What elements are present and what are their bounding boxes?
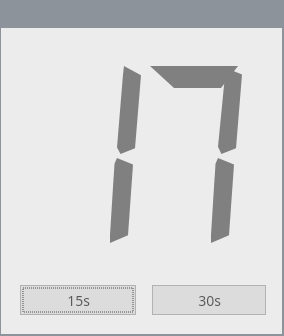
button[interactable]: Collapse — [194, 155, 220, 181]
button[interactable]: 30s — [152, 285, 266, 315]
staticText: 15s — [67, 291, 90, 310]
button[interactable]: Expand — [222, 155, 248, 181]
staticText: 30s — [198, 291, 221, 310]
button[interactable]: 15s — [20, 285, 136, 315]
staticText: Rec-Timer — [101, 158, 172, 178]
